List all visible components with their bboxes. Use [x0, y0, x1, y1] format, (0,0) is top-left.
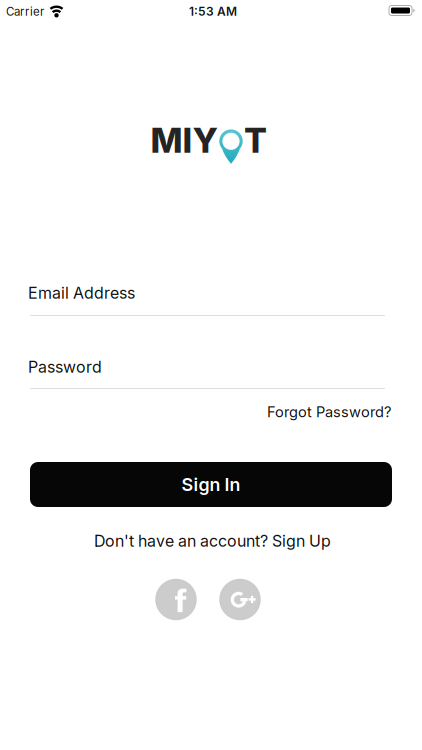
staticText: 1:53 AM	[189, 4, 237, 19]
staticText: MIY	[150, 120, 218, 161]
staticText: Email Address	[28, 283, 135, 303]
staticText: Don't have an account? Sign Up	[94, 531, 331, 551]
staticText: Sign In	[181, 474, 240, 495]
staticText: Password	[28, 357, 102, 377]
staticText: Carrier	[6, 4, 44, 18]
staticText: Forgot Password?	[267, 403, 391, 421]
staticText: T	[244, 120, 267, 161]
